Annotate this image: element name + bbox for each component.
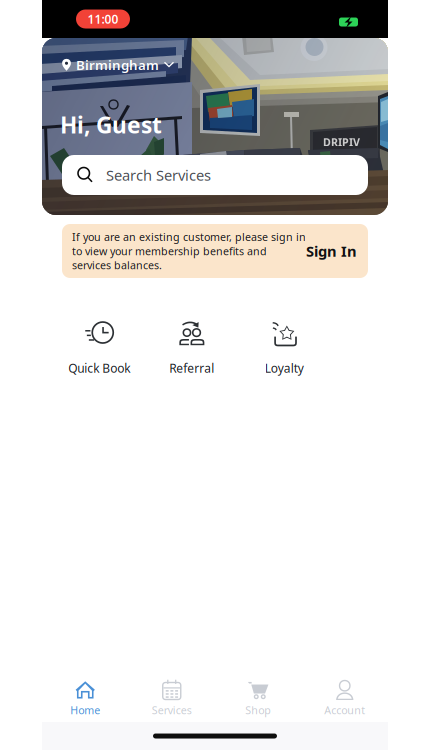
button[interactable]: Loyalty: [238, 318, 330, 376]
button[interactable]: Services: [128, 676, 215, 720]
button[interactable]: Sign In: [306, 241, 357, 261]
staticText: Services: [152, 703, 192, 717]
button[interactable]: Referral: [145, 318, 238, 376]
staticText: Shop: [245, 703, 271, 717]
staticText: If you are an existing customer, please …: [72, 230, 306, 272]
staticText: Home: [70, 703, 100, 717]
staticText: Quick Book: [68, 360, 130, 376]
button[interactable]: Account: [301, 676, 388, 720]
button[interactable]: Home: [42, 676, 128, 720]
button[interactable]: Search Services: [62, 155, 368, 195]
staticText: DRIPIV: [323, 135, 360, 149]
staticText: Search Services: [106, 165, 211, 185]
button[interactable]: Quick Book: [53, 318, 145, 376]
button[interactable]: Birmingham: [62, 56, 174, 74]
staticText: Hi, Guest: [60, 110, 162, 140]
staticText: Birmingham: [76, 56, 159, 74]
staticText: Account: [324, 703, 365, 717]
staticText: Loyalty: [265, 360, 304, 376]
button[interactable]: Shop: [215, 676, 301, 720]
staticText: Sign In: [306, 241, 357, 261]
staticText: 11:00: [87, 11, 118, 27]
staticText: Referral: [169, 360, 214, 376]
